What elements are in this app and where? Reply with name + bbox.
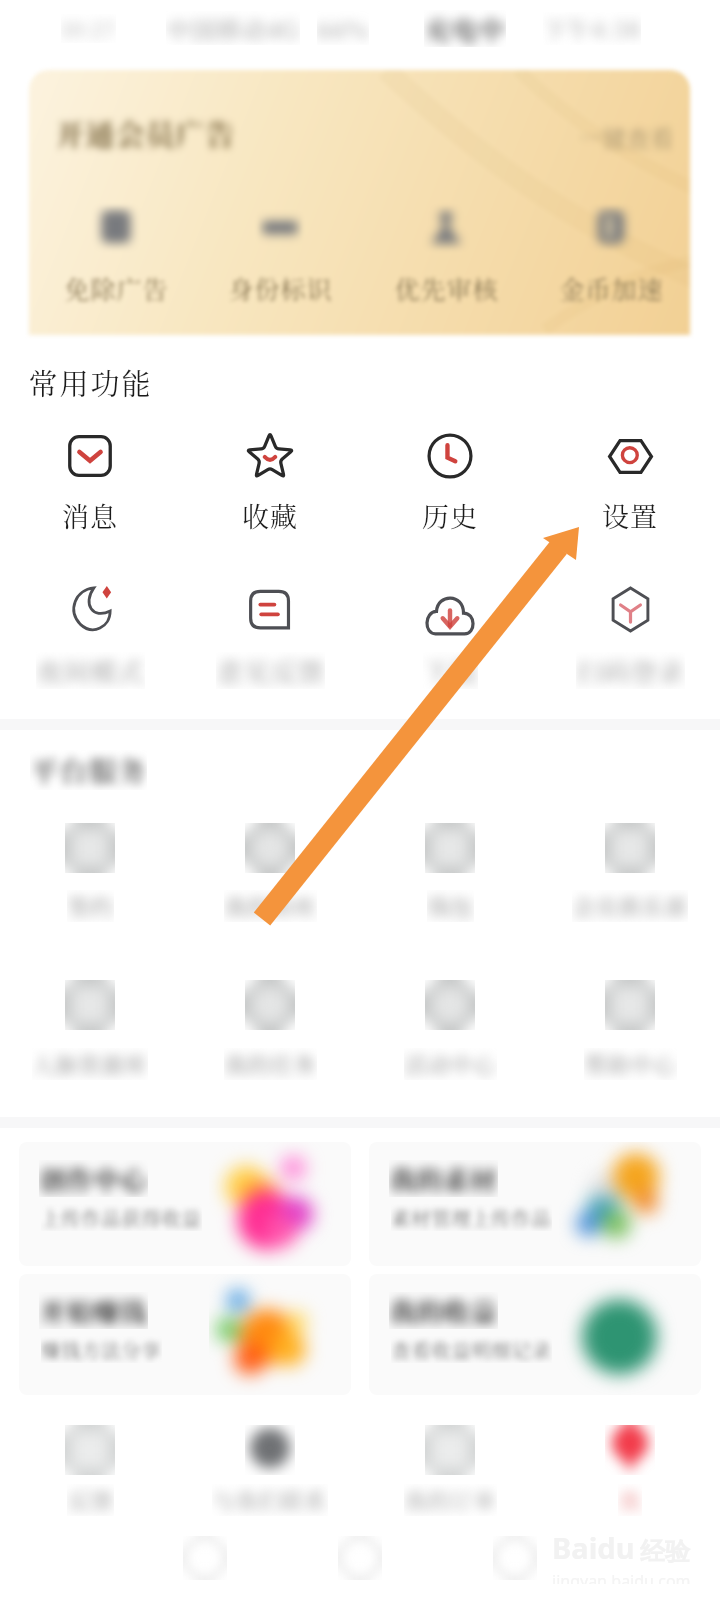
staticText: 我的收益 bbox=[389, 1292, 498, 1329]
staticText: 上传作品获得收益 bbox=[41, 1204, 202, 1231]
button[interactable]: 消息 bbox=[68, 434, 112, 478]
staticText: jingyan.baidu.com bbox=[552, 1570, 691, 1584]
staticText: 赚钱方法分享 bbox=[41, 1336, 162, 1363]
staticText: 开通会员广告 bbox=[55, 113, 236, 155]
staticText: 创作中心 bbox=[39, 1160, 148, 1197]
button[interactable]: 我的素材 bbox=[369, 1142, 701, 1266]
staticText: 我的订单 bbox=[404, 1484, 497, 1516]
staticText: 我 bbox=[618, 1484, 642, 1516]
button[interactable]: 历史 bbox=[320, 485, 580, 545]
staticText: 钱包 bbox=[427, 890, 474, 922]
staticText: 下午4:38 bbox=[543, 12, 641, 45]
button[interactable]: 与我们联系 bbox=[228, 1408, 312, 1492]
button[interactable]: 夜间模式 bbox=[66, 585, 114, 633]
button[interactable]: 身份标识 bbox=[236, 190, 316, 305]
button[interactable]: Share bbox=[482, 1525, 548, 1591]
staticText: 查看收益明细记录 bbox=[391, 1336, 552, 1363]
button[interactable]: 创作中心 bbox=[19, 1142, 351, 1266]
button[interactable]: 会员俱乐部 bbox=[588, 806, 672, 890]
staticText: 充电中 bbox=[424, 10, 506, 47]
staticText: 夜间模式 bbox=[36, 652, 145, 689]
staticText: 开始赚钱 bbox=[39, 1292, 148, 1329]
staticText: 意见反馈 bbox=[216, 652, 325, 689]
staticText: 会员俱乐部 bbox=[572, 890, 688, 922]
button[interactable]: 意见反馈 bbox=[248, 587, 292, 631]
staticText: 一键查看 bbox=[578, 121, 674, 154]
button[interactable]: 收藏 bbox=[140, 485, 400, 545]
button[interactable]: 我 bbox=[588, 1408, 672, 1492]
button[interactable]: 反馈 bbox=[48, 1408, 132, 1492]
staticText: 人脉资源库 bbox=[32, 1048, 148, 1080]
button[interactable]: 人脉资源库 bbox=[48, 963, 132, 1047]
staticText: 下载 bbox=[423, 652, 478, 689]
staticText: 我的任务 bbox=[224, 1048, 317, 1080]
button[interactable]: 我的收益 bbox=[369, 1274, 701, 1395]
staticText: 优先审核 bbox=[394, 270, 499, 306]
staticText: 设置 bbox=[602, 496, 658, 535]
button[interactable]: 优先审核 bbox=[402, 190, 482, 305]
staticText: 历史 bbox=[422, 496, 478, 535]
button[interactable]: 我的粉丝 bbox=[228, 806, 312, 890]
button[interactable]: 设置 bbox=[608, 434, 653, 479]
staticText: 帮助中心 bbox=[584, 1048, 677, 1080]
staticText: 中国移动4G bbox=[166, 11, 300, 45]
staticText: 活动中心 bbox=[404, 1048, 497, 1080]
staticText: 身份标识 bbox=[228, 270, 333, 306]
staticText: 金币加速 bbox=[559, 270, 664, 306]
button[interactable]: 历史 bbox=[427, 433, 473, 479]
staticText: 10:27 bbox=[61, 14, 116, 43]
staticText: 我的素材 bbox=[389, 1160, 498, 1197]
button[interactable]: Home bbox=[172, 1525, 238, 1591]
button[interactable]: 签约 bbox=[48, 806, 132, 890]
staticText: 扫码登录 bbox=[576, 652, 685, 689]
button[interactable]: 我的任务 bbox=[228, 963, 312, 1047]
button[interactable]: 消息 bbox=[0, 485, 220, 545]
staticText: 消息 bbox=[62, 496, 118, 535]
staticText: 免除广告 bbox=[64, 270, 169, 306]
button[interactable]: 免除广告 bbox=[72, 190, 152, 305]
button[interactable]: 下载 bbox=[424, 586, 476, 638]
button[interactable]: 金币加速 bbox=[567, 190, 647, 305]
button[interactable]: 二维码 bbox=[608, 587, 653, 632]
staticText: 签约 bbox=[67, 890, 114, 922]
staticText: 常用功能 bbox=[28, 362, 153, 400]
staticText: 反馈 bbox=[67, 1484, 114, 1516]
staticText: Baidu bbox=[552, 1528, 635, 1567]
staticText: 与我们联系 bbox=[212, 1484, 328, 1516]
staticText: 66% bbox=[317, 11, 369, 45]
button[interactable]: 常用功能 bbox=[28, 362, 208, 400]
staticText: 经验 bbox=[640, 1536, 690, 1567]
button[interactable]: 钱包 bbox=[408, 806, 492, 890]
button[interactable]: 帮助中心 bbox=[588, 963, 672, 1047]
button[interactable]: 收藏 bbox=[246, 432, 294, 480]
button[interactable]: 开始赚钱 bbox=[19, 1274, 351, 1395]
button[interactable]: 设置 bbox=[500, 485, 720, 545]
button[interactable]: 活动中心 bbox=[408, 963, 492, 1047]
staticText: 平台服务 bbox=[30, 750, 147, 790]
button[interactable]: Discover bbox=[327, 1525, 393, 1591]
button[interactable]: Open membership bbox=[29, 70, 690, 190]
staticText: 收藏 bbox=[242, 496, 298, 535]
button[interactable]: 我的订单 bbox=[408, 1408, 492, 1492]
staticText: 我的粉丝 bbox=[224, 890, 317, 922]
staticText: 素材管理上传作品 bbox=[391, 1204, 552, 1231]
